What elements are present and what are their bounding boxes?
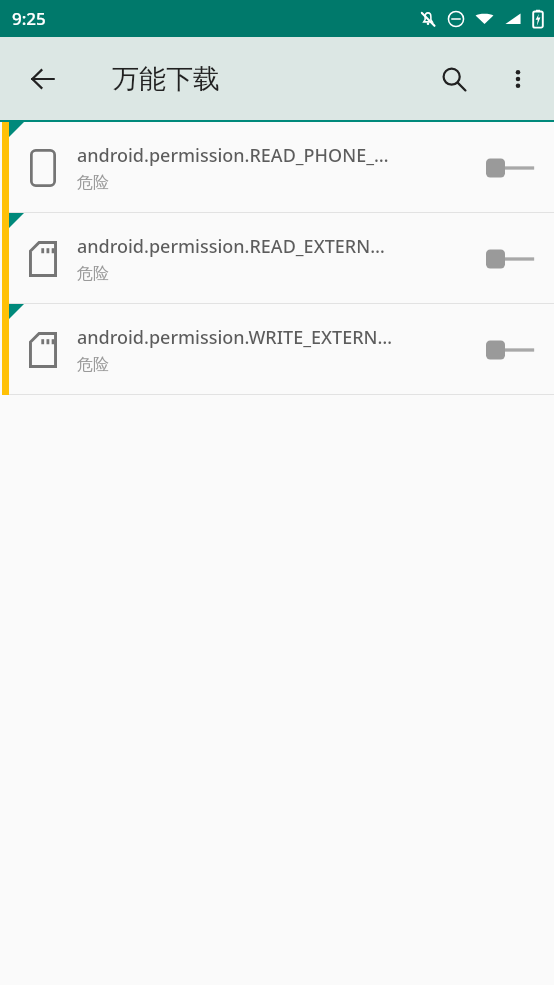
staticText: 危险	[77, 355, 109, 375]
button[interactable]: Toggle permission	[486, 328, 542, 372]
staticText: 危险	[77, 173, 109, 193]
staticText: 危险	[77, 264, 109, 284]
staticText: android.permission.WRITE_EXTERN…	[77, 325, 393, 350]
button[interactable]: More options	[494, 55, 542, 103]
button[interactable]: Toggle permission	[486, 237, 542, 281]
staticText: android.permission.READ_PHONE_…	[77, 143, 389, 168]
button[interactable]: Search	[430, 55, 478, 103]
button[interactable]: android.permission.READ_EXTERN…	[0, 213, 554, 304]
staticText: 9:25	[12, 7, 46, 30]
button[interactable]: android.permission.WRITE_EXTERN…	[0, 304, 554, 395]
button[interactable]: Toggle permission	[486, 146, 542, 190]
staticText: 万能下载	[112, 62, 220, 96]
button[interactable]: Back	[19, 55, 67, 103]
button[interactable]: android.permission.READ_PHONE_…	[0, 122, 554, 213]
staticText: android.permission.READ_EXTERN…	[77, 234, 385, 259]
